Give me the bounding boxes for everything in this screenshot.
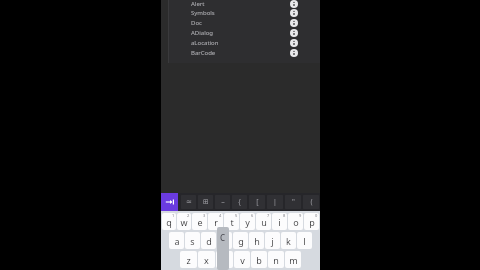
- button[interactable]: f: [217, 232, 232, 249]
- button[interactable]: ADialog: [168, 28, 320, 38]
- button[interactable]: ": [285, 195, 301, 209]
- staticText: w: [180, 216, 188, 228]
- staticText: l: [303, 235, 306, 247]
- button[interactable]: {: [232, 195, 247, 209]
- staticText: Doc: [191, 19, 202, 27]
- button[interactable]: ⊞: [198, 195, 213, 209]
- staticText: Symbols: [191, 9, 215, 17]
- button[interactable]: ≈: [181, 195, 196, 209]
- staticText: e: [197, 216, 203, 228]
- button[interactable]: p: [304, 213, 319, 230]
- staticText: k: [286, 235, 291, 247]
- staticText: –: [221, 197, 225, 207]
- staticText: x: [204, 254, 209, 266]
- staticText: 2: [187, 213, 190, 218]
- staticText: 9: [299, 213, 302, 218]
- button[interactable]: v: [234, 251, 250, 268]
- button[interactable]: Doc: [168, 18, 320, 28]
- button[interactable]: z: [180, 251, 197, 268]
- staticText: 5: [235, 213, 238, 218]
- staticText: r: [214, 216, 218, 228]
- staticText: y: [245, 216, 250, 228]
- staticText: (: [310, 197, 313, 207]
- staticText: 0: [315, 213, 318, 218]
- staticText: 4: [219, 213, 222, 218]
- staticText: i: [278, 216, 281, 228]
- staticText: n: [273, 254, 279, 266]
- button[interactable]: t: [224, 213, 239, 230]
- staticText: Alert: [191, 0, 205, 8]
- button[interactable]: (: [303, 195, 319, 209]
- staticText: s: [190, 235, 195, 247]
- staticText: 1: [172, 213, 175, 218]
- staticText: ≈: [186, 198, 192, 206]
- staticText: g: [238, 235, 244, 247]
- button[interactable]: s: [185, 232, 200, 249]
- button[interactable]: u: [256, 213, 271, 230]
- staticText: ": [292, 197, 295, 207]
- button[interactable]: BarCode: [168, 48, 320, 58]
- staticText: C: [220, 232, 226, 243]
- button[interactable]: q: [162, 213, 176, 230]
- staticText: f: [223, 235, 227, 247]
- button[interactable]: Alert: [168, 0, 320, 8]
- button[interactable]: n: [268, 251, 284, 268]
- button[interactable]: aLocation: [168, 38, 320, 48]
- staticText: z: [186, 254, 191, 266]
- staticText: ⊞: [203, 198, 209, 206]
- staticText: 7: [267, 213, 270, 218]
- button[interactable]: d: [201, 232, 216, 249]
- staticText: u: [261, 216, 267, 228]
- staticText: m: [289, 254, 298, 266]
- button[interactable]: a: [169, 232, 184, 249]
- button[interactable]: e: [192, 213, 207, 230]
- staticText: q: [166, 216, 172, 228]
- staticText: BarCode: [191, 49, 216, 57]
- button[interactable]: r: [208, 213, 223, 230]
- button[interactable]: l: [297, 232, 312, 249]
- button[interactable]: h: [249, 232, 264, 249]
- button[interactable]: c: [216, 251, 233, 268]
- staticText: [: [256, 197, 259, 207]
- button[interactable]: x: [198, 251, 215, 268]
- button[interactable]: Symbols: [168, 8, 320, 18]
- button[interactable]: i: [272, 213, 287, 230]
- staticText: {: [238, 197, 241, 207]
- staticText: b: [256, 254, 262, 266]
- staticText: v: [240, 254, 245, 266]
- staticText: ADialog: [191, 29, 213, 37]
- button[interactable]: o: [288, 213, 303, 230]
- button[interactable]: –: [215, 195, 230, 209]
- button[interactable]: j: [265, 232, 280, 249]
- button[interactable]: k: [281, 232, 296, 249]
- staticText: o: [293, 216, 299, 228]
- staticText: 6: [251, 213, 254, 218]
- button[interactable]: y: [240, 213, 255, 230]
- button[interactable]: g: [233, 232, 248, 249]
- button[interactable]: b: [251, 251, 267, 268]
- button[interactable]: Tab: [161, 193, 178, 211]
- staticText: 8: [283, 213, 286, 218]
- button[interactable]: |: [267, 195, 283, 209]
- button[interactable]: m: [285, 251, 301, 268]
- staticText: t: [230, 216, 234, 228]
- staticText: j: [271, 235, 274, 247]
- button[interactable]: w: [177, 213, 191, 230]
- staticText: p: [309, 216, 315, 228]
- staticText: d: [206, 235, 212, 247]
- staticText: 3: [203, 213, 206, 218]
- staticText: |: [273, 197, 277, 207]
- button[interactable]: [: [249, 195, 265, 209]
- staticText: h: [254, 235, 260, 247]
- staticText: a: [174, 235, 180, 247]
- staticText: aLocation: [191, 39, 219, 47]
